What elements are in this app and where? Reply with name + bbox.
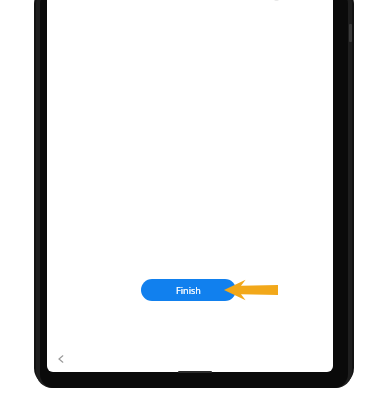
- button[interactable]: Finish: [141, 279, 236, 301]
- other: Pointer highlighting Finish button: [224, 275, 278, 305]
- staticText: Finish: [176, 284, 201, 296]
- button[interactable]: Back: [52, 350, 70, 368]
